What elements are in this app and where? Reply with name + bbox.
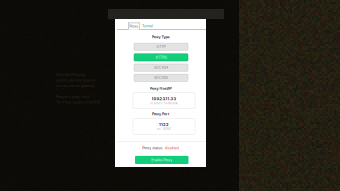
staticText: SOCKS4 — [154, 65, 168, 70]
staticText: Proxy status: — [142, 146, 163, 150]
staticText: Proxy Port — [152, 112, 169, 116]
staticText: 109.23.11.33 — [151, 96, 176, 101]
staticText: restore your real location — [56, 78, 96, 82]
staticText: disabled — [165, 146, 179, 150]
button[interactable]: SOCKS4 — [134, 64, 188, 71]
staticText: Proxy Type — [151, 35, 169, 39]
button[interactable]: SOCKS5 — [134, 74, 188, 81]
staticText: or proxy hostname — [150, 101, 178, 105]
staticText: use our secure gateway — [56, 84, 95, 88]
staticText: Enable Proxy — [151, 158, 172, 162]
staticText: ex. 8080 — [157, 127, 171, 131]
staticText: Proxy — [129, 24, 138, 28]
staticText: HTTPS — [155, 55, 166, 59]
staticText: 1122 — [159, 122, 169, 127]
button[interactable]: HTTPS — [134, 54, 188, 61]
staticText: Try it free readme.md/2024 — [56, 100, 100, 104]
button[interactable]: Proxy — [128, 23, 139, 30]
staticText: HTTP — [156, 45, 165, 49]
staticText: SOCKS5 — [154, 76, 168, 80]
staticText: Proxy Host/IP — [149, 86, 171, 91]
button[interactable]: HTTP — [134, 43, 188, 50]
staticText: Anti-cafe Proxying — [56, 73, 85, 77]
staticText: Tunnel — [142, 24, 153, 28]
button[interactable]: Enable Proxy — [135, 156, 188, 164]
button[interactable]: Tunnel — [141, 23, 154, 29]
staticText: Require a proxy host — [56, 95, 89, 99]
